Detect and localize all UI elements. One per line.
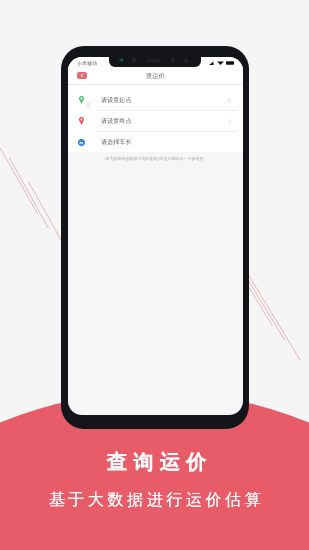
button[interactable]: 请设置起点 xyxy=(68,90,243,110)
button[interactable]: 请选择车长 xyxy=(68,132,243,152)
staticText: 小米移动 xyxy=(77,60,97,66)
button[interactable]: 请设置终点 xyxy=(68,111,243,131)
button[interactable]: Back xyxy=(77,72,87,79)
staticText: 因为价格受到诸多方面的影响,这里只能给出一个参考价 xyxy=(68,156,242,162)
staticText: 查运价 xyxy=(146,72,165,80)
button[interactable]: Swap start and end xyxy=(87,102,91,108)
staticText: 请设置终点 xyxy=(101,117,132,125)
staticText: 查询运价 xyxy=(5,450,309,475)
staticText: 请设置起点 xyxy=(101,96,132,104)
staticText: 基于大数据进行运价估算 xyxy=(2,490,309,510)
staticText: 请选择车长 xyxy=(101,138,132,146)
